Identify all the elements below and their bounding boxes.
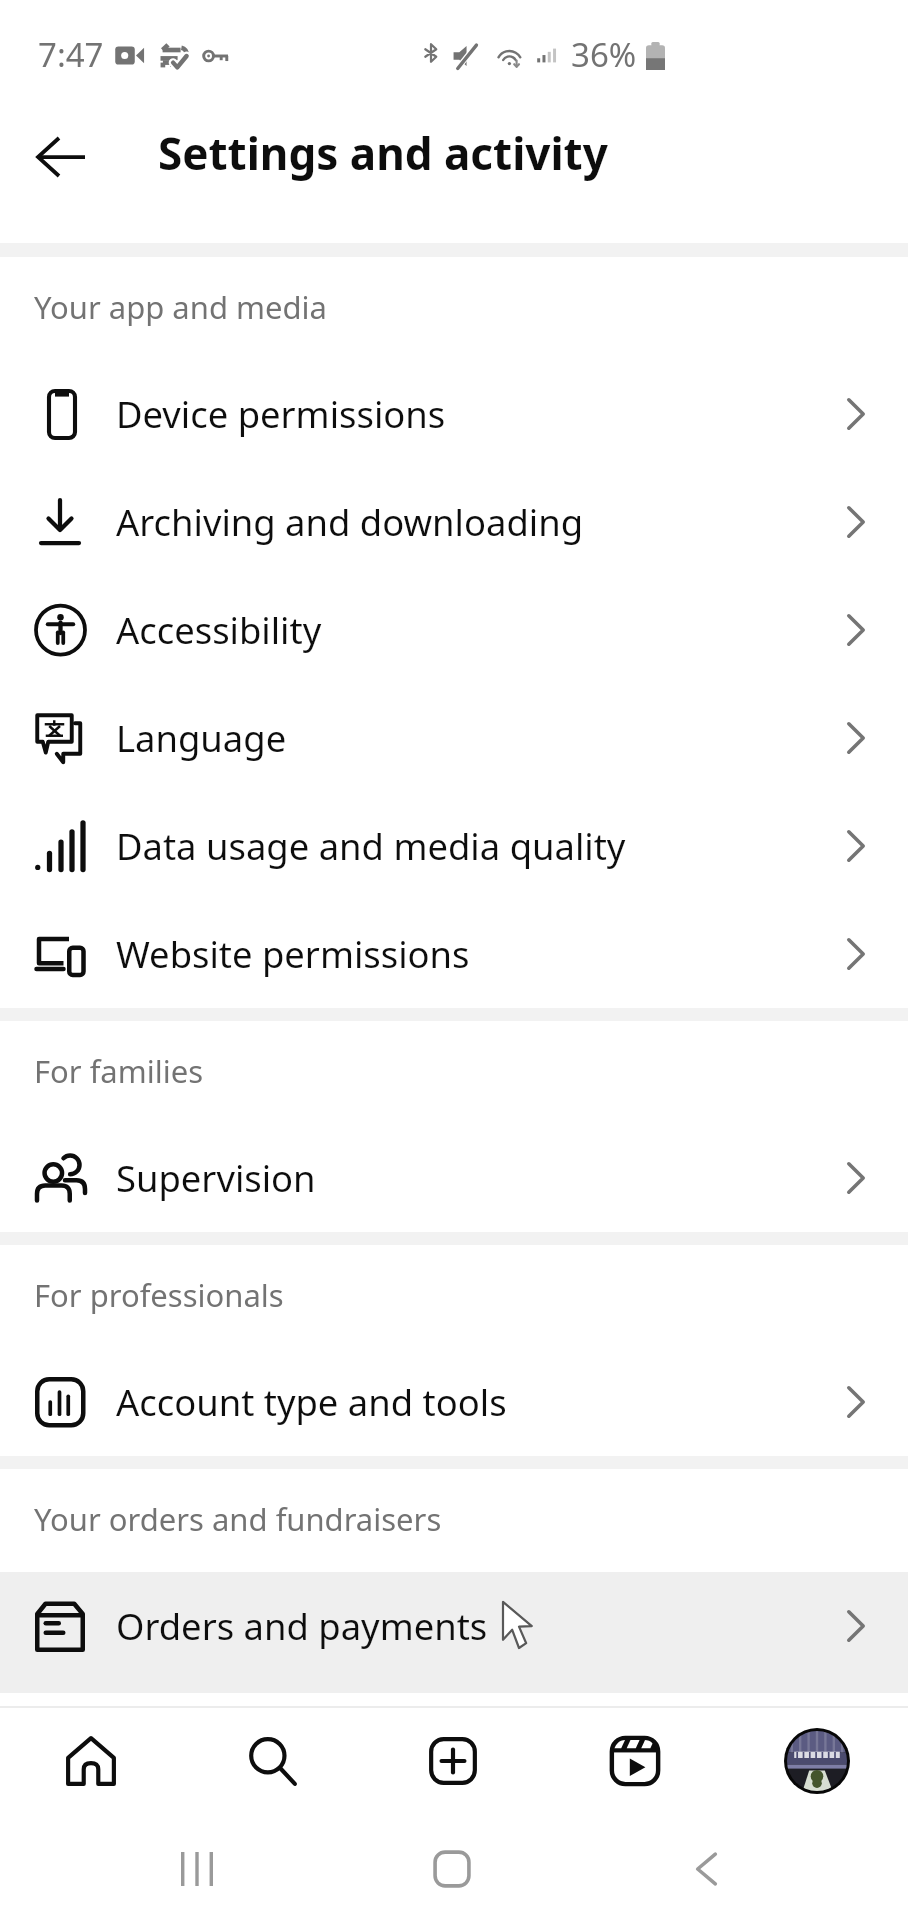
button[interactable]: Archiving and downloading bbox=[0, 468, 908, 576]
staticText: Website permissions bbox=[116, 929, 470, 979]
staticText: 36% bbox=[571, 32, 637, 77]
button[interactable]: Accessibility bbox=[0, 576, 908, 684]
staticText: Your orders and fundraisers bbox=[34, 1498, 442, 1540]
button[interactable]: Home bbox=[429, 1846, 474, 1891]
button[interactable]: Search bbox=[181, 1708, 362, 1813]
button[interactable]: Device permissions bbox=[0, 360, 908, 468]
staticText: Data usage and media quality bbox=[116, 821, 626, 871]
staticText: Language bbox=[116, 713, 287, 763]
staticText: Supervision bbox=[116, 1153, 316, 1203]
staticText: Accessibility bbox=[116, 605, 322, 655]
button[interactable]: Language bbox=[0, 684, 908, 792]
staticText: Your app and media bbox=[34, 286, 327, 328]
staticText: 7:47 bbox=[38, 32, 104, 77]
button[interactable]: Supervision bbox=[0, 1124, 908, 1232]
staticText: Device permissions bbox=[116, 389, 446, 439]
button[interactable]: Reels bbox=[544, 1708, 726, 1813]
staticText: For families bbox=[34, 1050, 204, 1092]
button[interactable]: Orders and payments bbox=[0, 1572, 908, 1693]
button[interactable]: Home bbox=[0, 1708, 181, 1813]
staticText: Account type and tools bbox=[116, 1377, 507, 1427]
button[interactable]: Back bbox=[684, 1846, 729, 1891]
button[interactable]: Website permissions bbox=[0, 900, 908, 1008]
button[interactable]: Account type and tools bbox=[0, 1348, 908, 1456]
staticText: Archiving and downloading bbox=[116, 497, 584, 547]
button[interactable]: Back bbox=[6, 102, 116, 212]
button[interactable]: Data usage and media quality bbox=[0, 792, 908, 900]
staticText: Settings and activity bbox=[158, 123, 608, 183]
staticText: Orders and payments bbox=[116, 1601, 488, 1651]
button[interactable]: Recents bbox=[174, 1846, 219, 1891]
staticText: For professionals bbox=[34, 1274, 284, 1316]
button[interactable]: Create bbox=[362, 1708, 544, 1813]
button[interactable]: Profile bbox=[726, 1708, 908, 1813]
